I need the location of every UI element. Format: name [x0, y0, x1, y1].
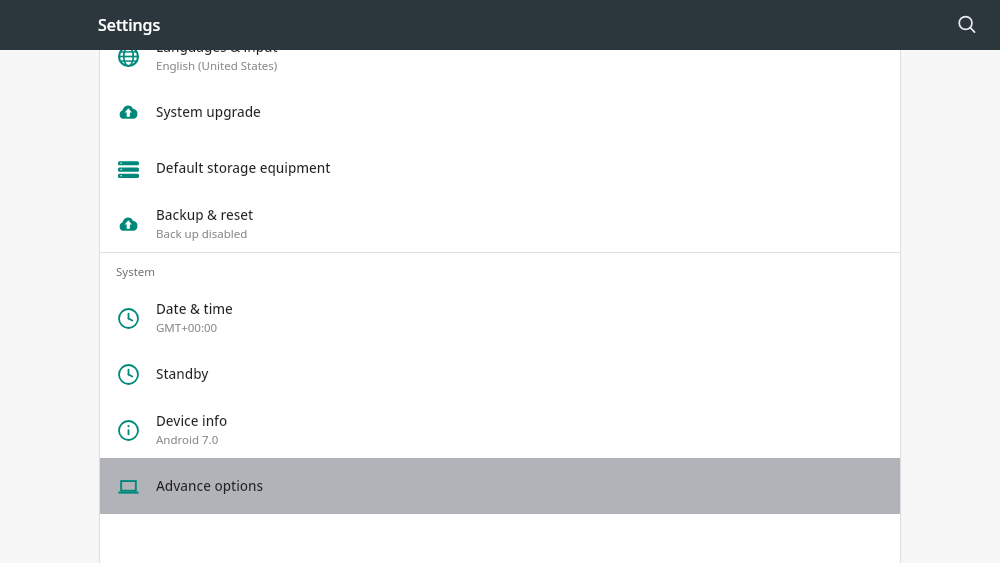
staticText: GMT+00:00	[156, 320, 218, 336]
button[interactable]: Backup & reset	[100, 196, 900, 252]
staticText: Backup & reset	[156, 206, 254, 224]
staticText: Advance options	[156, 477, 264, 495]
button[interactable]: Advance options	[100, 458, 900, 514]
button[interactable]: Standby	[100, 346, 900, 402]
staticText: System	[116, 264, 156, 280]
button[interactable]: Device info	[100, 402, 900, 458]
button[interactable]: Default storage equipment	[100, 140, 900, 196]
staticText: System upgrade	[156, 103, 261, 121]
button[interactable]: Languages & input	[100, 28, 900, 84]
button[interactable]: Google	[100, 0, 900, 28]
staticText: Languages & input	[156, 38, 278, 56]
button[interactable]: System upgrade	[100, 84, 900, 140]
staticText: Back up disabled	[156, 226, 248, 242]
staticText: Settings	[98, 14, 161, 36]
staticText: Android 7.0	[156, 432, 219, 448]
staticText: English (United States)	[156, 58, 278, 74]
button[interactable]: Search	[942, 0, 992, 50]
staticText: Date & time	[156, 300, 233, 318]
staticText: Standby	[156, 365, 209, 383]
button[interactable]: Date & time	[100, 290, 900, 346]
staticText: Default storage equipment	[156, 159, 331, 177]
staticText: Device info	[156, 412, 228, 430]
